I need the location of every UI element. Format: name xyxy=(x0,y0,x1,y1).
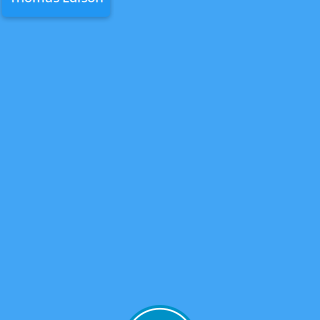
staticText: Thomas Edison xyxy=(9,0,103,6)
button[interactable]: Thomas Edison xyxy=(2,0,110,17)
button[interactable]: Thomas Edison avatar xyxy=(121,305,198,320)
